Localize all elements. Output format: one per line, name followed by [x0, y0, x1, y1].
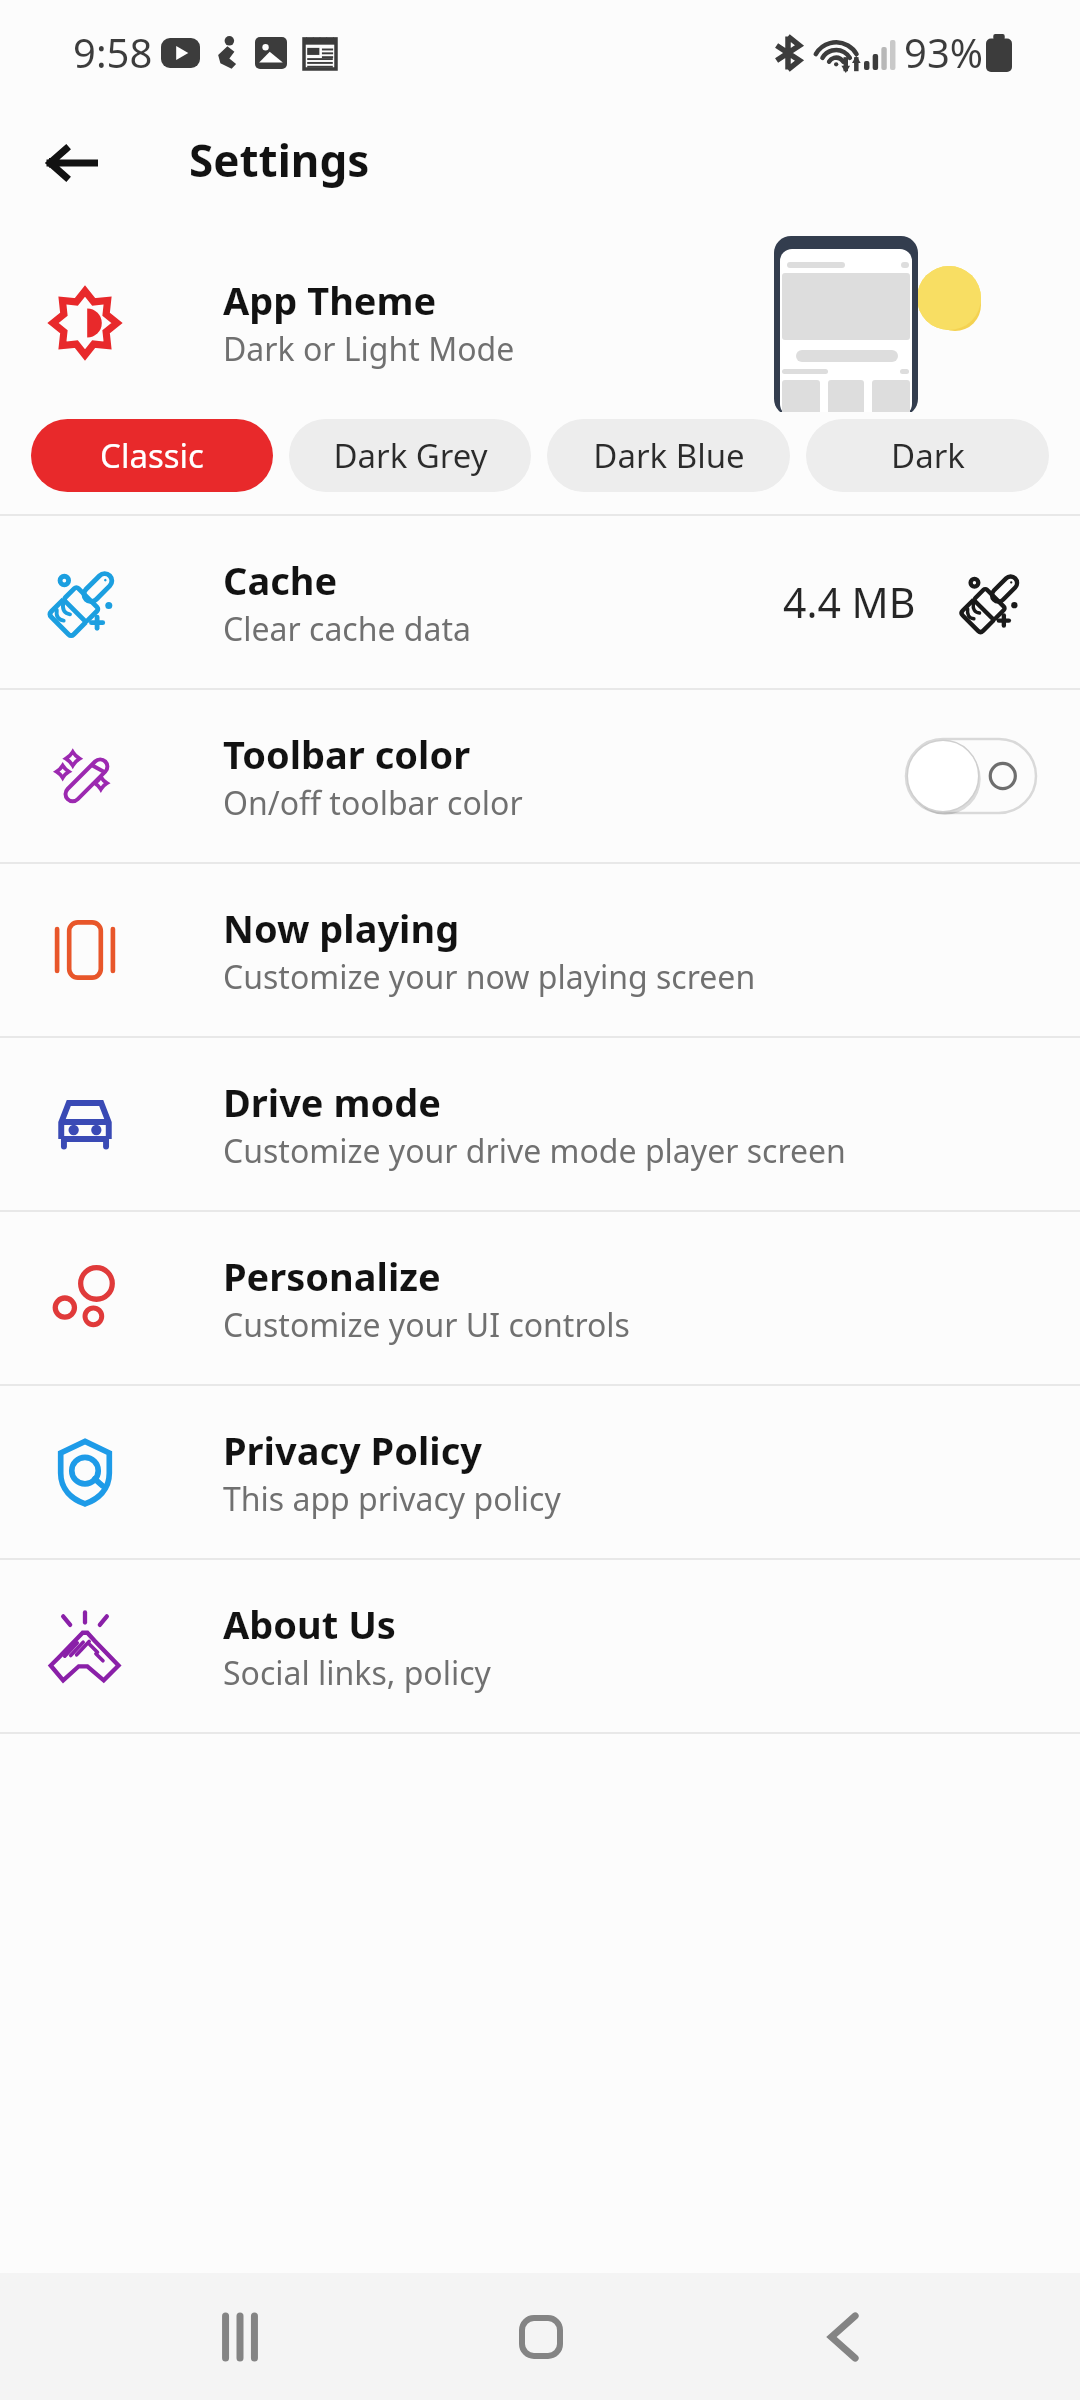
button[interactable]: Clear cache — [958, 567, 1028, 637]
staticText: 4.4 MB — [783, 574, 916, 630]
button[interactable]: Toolbar color — [0, 690, 1080, 862]
button[interactable]: Cache — [0, 516, 1080, 688]
button[interactable]: Toolbar color toggle — [905, 738, 1037, 814]
button[interactable]: Classic — [31, 419, 273, 492]
staticText: Customize your now playing screen — [223, 955, 756, 999]
button[interactable]: Dark — [806, 419, 1049, 492]
staticText: Dark Grey — [333, 433, 488, 478]
staticText: Dark Blue — [593, 433, 745, 478]
button[interactable]: Privacy Policy — [0, 1386, 1080, 1558]
staticText: Dark — [891, 433, 965, 478]
staticText: Settings — [189, 130, 370, 190]
button[interactable]: Dark Grey — [289, 419, 531, 492]
button[interactable]: Drive mode — [0, 1038, 1080, 1210]
staticText: 93% — [904, 25, 983, 79]
staticText: This app privacy policy — [223, 1477, 561, 1521]
staticText: Dark or Light Mode — [223, 327, 515, 371]
staticText: On/off toolbar color — [223, 781, 523, 825]
staticText: Classic — [100, 433, 204, 478]
staticText: Customize your UI controls — [223, 1303, 630, 1347]
button[interactable]: Recent apps — [180, 2277, 300, 2397]
staticText: Social links, policy — [223, 1651, 491, 1695]
staticText: Privacy Policy — [223, 1424, 482, 1476]
button[interactable]: Personalize — [0, 1212, 1080, 1384]
button[interactable]: About Us — [0, 1560, 1080, 1732]
staticText: 9:58 — [73, 25, 153, 79]
button[interactable]: Dark Blue — [547, 419, 790, 492]
staticText: Customize your drive mode player screen — [223, 1129, 846, 1173]
staticText: Toolbar color — [223, 728, 471, 780]
staticText: About Us — [223, 1598, 396, 1650]
staticText: Now playing — [223, 902, 460, 954]
button[interactable]: Back — [28, 119, 116, 207]
button[interactable]: Home — [481, 2277, 601, 2397]
staticText: App Theme — [223, 274, 437, 326]
staticText: Clear cache data — [223, 607, 471, 651]
button[interactable]: Now playing — [0, 864, 1080, 1036]
button[interactable]: Back — [783, 2277, 903, 2397]
staticText: Drive mode — [223, 1076, 441, 1128]
staticText: Personalize — [223, 1250, 441, 1302]
staticText: Cache — [223, 554, 338, 606]
